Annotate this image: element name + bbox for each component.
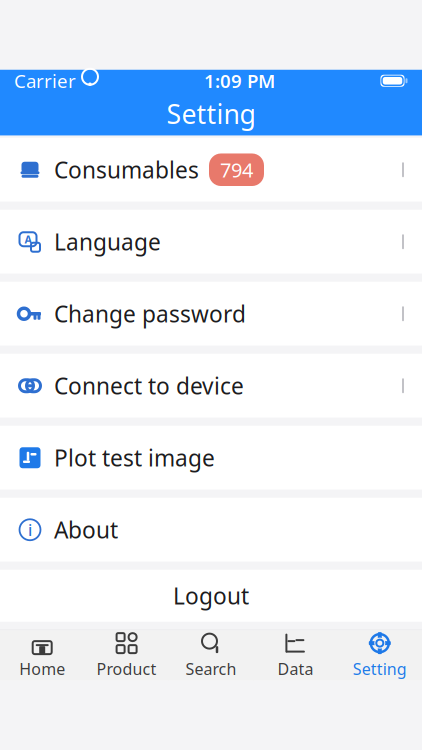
button[interactable]: Change password xyxy=(0,282,422,346)
staticText: 794 xyxy=(220,156,253,183)
staticText: Data xyxy=(277,658,313,679)
button[interactable]: Connect to device xyxy=(0,354,422,418)
button[interactable]: Plot test image xyxy=(0,426,422,490)
staticText: Consumables xyxy=(54,155,199,185)
staticText: Setting xyxy=(166,96,255,131)
staticText: Product xyxy=(97,658,157,679)
staticText: Setting xyxy=(353,658,407,679)
staticText: Language xyxy=(54,227,161,257)
button[interactable]: Setting xyxy=(338,630,422,680)
button[interactable]: i xyxy=(0,498,422,562)
staticText: About xyxy=(54,515,118,545)
staticText: Home xyxy=(19,658,65,679)
button[interactable]: Product xyxy=(84,630,169,680)
button[interactable]: Home xyxy=(0,630,84,680)
button[interactable]: Logout xyxy=(0,570,422,622)
button[interactable]: A xyxy=(0,210,422,274)
staticText: Search xyxy=(185,658,236,679)
staticText: Carrier xyxy=(14,68,76,93)
staticText: Plot test image xyxy=(54,443,215,473)
staticText: 1:09 PM xyxy=(204,68,275,93)
button[interactable]: Consumables xyxy=(0,138,422,202)
staticText: Logout xyxy=(173,581,249,611)
button[interactable]: Data xyxy=(253,630,338,680)
staticText: Change password xyxy=(54,299,246,329)
staticText: i xyxy=(28,519,32,540)
staticText: A xyxy=(24,232,31,246)
staticText: Connect to device xyxy=(54,371,244,401)
button[interactable]: Search xyxy=(169,630,253,680)
